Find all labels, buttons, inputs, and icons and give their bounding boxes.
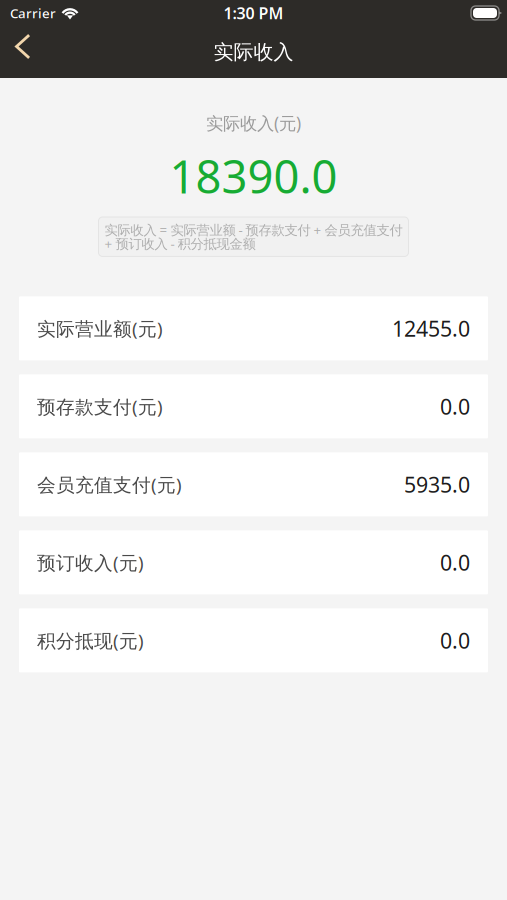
staticText: 会员充值支付(元) [37,472,182,497]
staticText: 积分抵现(元) [37,628,144,653]
button[interactable]: 预订收入(元) [19,530,488,594]
staticText: 1:30 PM [223,2,283,24]
button[interactable]: 积分抵现(元) [19,608,488,672]
staticText: 预存款支付(元) [37,394,163,419]
staticText: 0.0 [440,548,470,576]
staticText: 实际营业额(元) [37,316,163,341]
staticText: 实际收入 [213,40,293,64]
staticText: 预订收入(元) [37,550,144,575]
staticText: 5935.0 [404,470,470,498]
staticText: 18390.0 [169,146,337,206]
staticText: 0.0 [440,626,470,654]
button[interactable]: 会员充值支付(元) [19,452,488,516]
button[interactable]: Back [0,26,44,78]
staticText: 12455.0 [392,314,470,342]
staticText: 实际收入 = 实际营业额 - 预存款支付 + 会员充值支付 + 预订收入 - 积… [104,221,402,252]
button[interactable]: 实际营业额(元) [19,296,488,360]
staticText: Carrier [10,4,56,22]
staticText: 实际收入(元) [206,111,301,134]
button[interactable]: 预存款支付(元) [19,374,488,438]
staticText: 0.0 [440,392,470,420]
